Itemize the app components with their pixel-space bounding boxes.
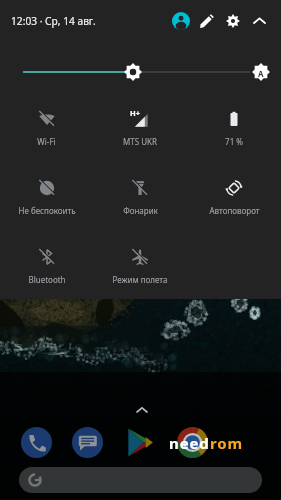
button[interactable]: Phone [21,427,52,458]
button[interactable]: Messages [72,427,103,458]
button[interactable]: Edit tiles [194,8,220,34]
button[interactable]: H+ [93,95,187,147]
staticText: A [258,68,264,79]
button[interactable]: Play Store [124,427,155,458]
staticText: need [169,433,210,453]
staticText: Не беспокоить [18,205,76,216]
button[interactable]: Brightness [0,42,281,95]
staticText: Фонарик [123,205,158,216]
button[interactable]: Settings [220,8,246,34]
staticText: rom [210,433,244,453]
staticText: Режим полета [112,274,168,285]
staticText: Bluetooth [28,274,66,285]
button[interactable]: Автоповорот [187,164,281,216]
button[interactable]: Wi-Fi [0,95,93,147]
button[interactable]: 71 % [187,95,281,147]
staticText: H+ [130,108,141,118]
button[interactable]: Bluetooth [0,233,93,285]
staticText: Автоповорот [209,205,260,216]
button[interactable]: Collapse [246,8,272,34]
button[interactable]: Фонарик [93,164,187,216]
button[interactable]: Search [19,467,262,493]
staticText: 12:03 · Ср, 14 авг. [11,14,96,28]
button[interactable]: Не беспокоить [0,164,93,216]
staticText: MTS UKR [123,136,157,147]
staticText: 71 % [225,136,243,147]
staticText: Wi-Fi [37,136,56,147]
button[interactable]: User account [168,8,194,34]
button[interactable]: Chrome [177,427,208,458]
button[interactable]: Режим полета [93,233,187,285]
